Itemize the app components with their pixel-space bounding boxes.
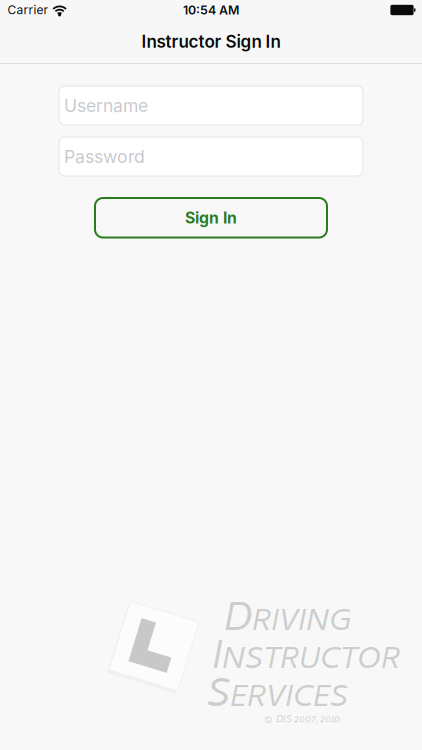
staticText: Password (64, 146, 145, 167)
staticText: NSTRUCTOR (222, 637, 400, 688)
staticText: Sign In (185, 208, 237, 227)
staticText: RIVING (252, 599, 351, 650)
staticText: © DIS 2007, 2010 (264, 712, 341, 728)
button[interactable]: Password (59, 137, 363, 176)
staticText: I (212, 628, 222, 693)
staticText: D (224, 590, 252, 655)
staticText: Instructor Sign In (141, 31, 280, 52)
staticText: Username (64, 95, 148, 116)
button[interactable]: Username (59, 86, 363, 125)
staticText: S (207, 666, 230, 731)
staticText: 10:54 AM (183, 2, 239, 17)
button[interactable]: Sign In (95, 198, 327, 237)
staticText: Carrier (7, 3, 48, 17)
staticText: ERVICES (230, 675, 348, 726)
